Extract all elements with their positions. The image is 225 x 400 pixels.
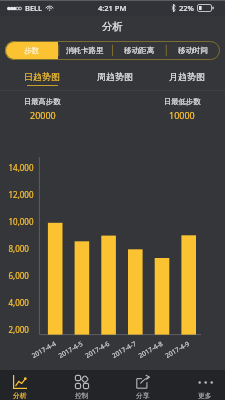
- staticText: 分析: [102, 20, 123, 33]
- staticText: 日最低步数: [164, 97, 201, 106]
- button[interactable]: 周趋势图: [90, 60, 140, 91]
- staticText: 消耗卡路里: [66, 46, 104, 55]
- staticText: 分享: [136, 391, 150, 400]
- button[interactable]: 更多: [191, 370, 219, 400]
- staticText: 22%: [179, 3, 194, 13]
- button[interactable]: 步数: [5, 41, 58, 60]
- staticText: 周趋势图: [97, 71, 133, 82]
- button[interactable]: 日趋势图: [17, 60, 67, 91]
- staticText: 移动距离: [124, 46, 154, 55]
- button[interactable]: 移动距离: [112, 41, 166, 60]
- staticText: 10000: [169, 109, 195, 121]
- button[interactable]: 控制: [68, 370, 96, 400]
- button[interactable]: 月趋势图: [162, 60, 212, 91]
- button[interactable]: 移动时间: [166, 41, 220, 60]
- staticText: BELL: [25, 3, 43, 13]
- staticText: 月趋势图: [169, 71, 205, 82]
- staticText: 控制: [75, 391, 89, 400]
- staticText: 更多: [198, 391, 212, 400]
- staticText: 步数: [24, 46, 39, 55]
- staticText: 日趋势图: [24, 71, 60, 82]
- staticText: 日最高步数: [24, 97, 61, 106]
- staticText: 20000: [30, 109, 56, 121]
- button[interactable]: 分析: [6, 370, 34, 400]
- button[interactable]: 分享: [129, 370, 157, 400]
- staticText: 移动时间: [178, 46, 208, 55]
- staticText: 分析: [13, 391, 27, 400]
- staticText: 4:21 PM: [98, 3, 127, 13]
- button[interactable]: 消耗卡路里: [58, 41, 112, 60]
